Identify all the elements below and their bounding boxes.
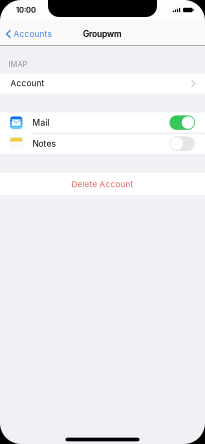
- staticText: Notes: [32, 139, 55, 149]
- button[interactable]: Mail: [169, 115, 195, 130]
- staticText: Accounts: [13, 29, 51, 39]
- staticText: IMAP: [8, 60, 27, 69]
- staticText: 10:00: [16, 5, 36, 14]
- staticText: Mail: [32, 118, 49, 128]
- button[interactable]: Notes: [169, 136, 195, 151]
- button[interactable]: Account: [0, 73, 205, 93]
- button[interactable]: Delete Account: [0, 173, 205, 195]
- staticText: Delete Account: [71, 180, 133, 189]
- staticText: Account: [10, 78, 44, 88]
- staticText: Groupwm: [83, 29, 122, 39]
- button[interactable]: Accounts: [0, 24, 57, 44]
